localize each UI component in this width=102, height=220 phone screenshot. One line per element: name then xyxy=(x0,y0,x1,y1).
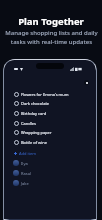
staticText: Plan Together xyxy=(18,15,84,28)
button[interactable]: Jake xyxy=(4,179,96,187)
button[interactable]: Add item xyxy=(4,149,96,158)
staticText: Rasul xyxy=(21,171,32,176)
button[interactable]: Rasul xyxy=(4,169,96,177)
button[interactable]: Wrapping paper xyxy=(4,127,96,137)
staticText: Candles xyxy=(21,121,36,126)
staticText: Dark chocolate xyxy=(21,101,50,106)
button[interactable]: Dark chocolate xyxy=(4,98,96,108)
staticText: Birthday card xyxy=(21,111,47,116)
staticText: Add item xyxy=(19,151,36,156)
button[interactable]: Bottle of wine xyxy=(4,137,96,147)
button[interactable]: Candles xyxy=(4,118,96,128)
staticText: Jake xyxy=(21,181,29,186)
staticText: Wrapping paper xyxy=(21,130,52,135)
button[interactable]: Flowers for Emma's mum xyxy=(4,89,96,99)
staticText: Flowers for Emma's mum xyxy=(21,92,69,97)
staticText: Bottle of wine xyxy=(21,140,47,145)
staticText: Ilya xyxy=(21,161,28,166)
button[interactable]: Birthday card xyxy=(4,108,96,118)
button[interactable]: Close xyxy=(84,80,89,85)
button[interactable]: Ilya xyxy=(4,159,96,167)
staticText: Manage shopping lists and daily tasks wi… xyxy=(5,29,98,46)
